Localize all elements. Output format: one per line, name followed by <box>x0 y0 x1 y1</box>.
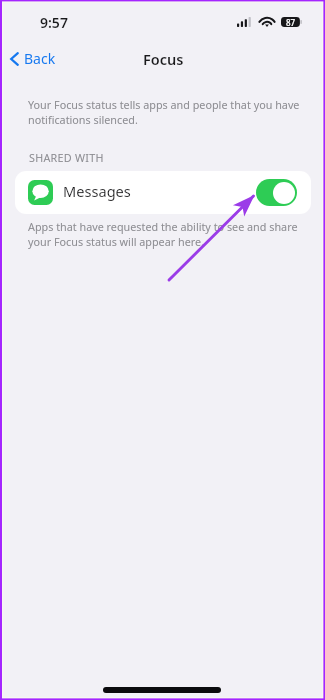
staticText: SHARED WITH <box>29 150 104 165</box>
button[interactable]: Back <box>6 45 60 72</box>
button[interactable]: Toggle Messages sharing <box>256 179 297 206</box>
staticText: Apps that have requested the ability to … <box>28 219 298 249</box>
staticText: 87 <box>286 17 296 27</box>
staticText: Back <box>24 49 56 68</box>
staticText: Your Focus status tells apps and people … <box>28 97 300 127</box>
staticText: Focus <box>143 49 184 69</box>
staticText: Messages <box>63 181 131 201</box>
staticText: 9:57 <box>40 13 68 32</box>
button[interactable]: Messages <box>15 171 311 214</box>
